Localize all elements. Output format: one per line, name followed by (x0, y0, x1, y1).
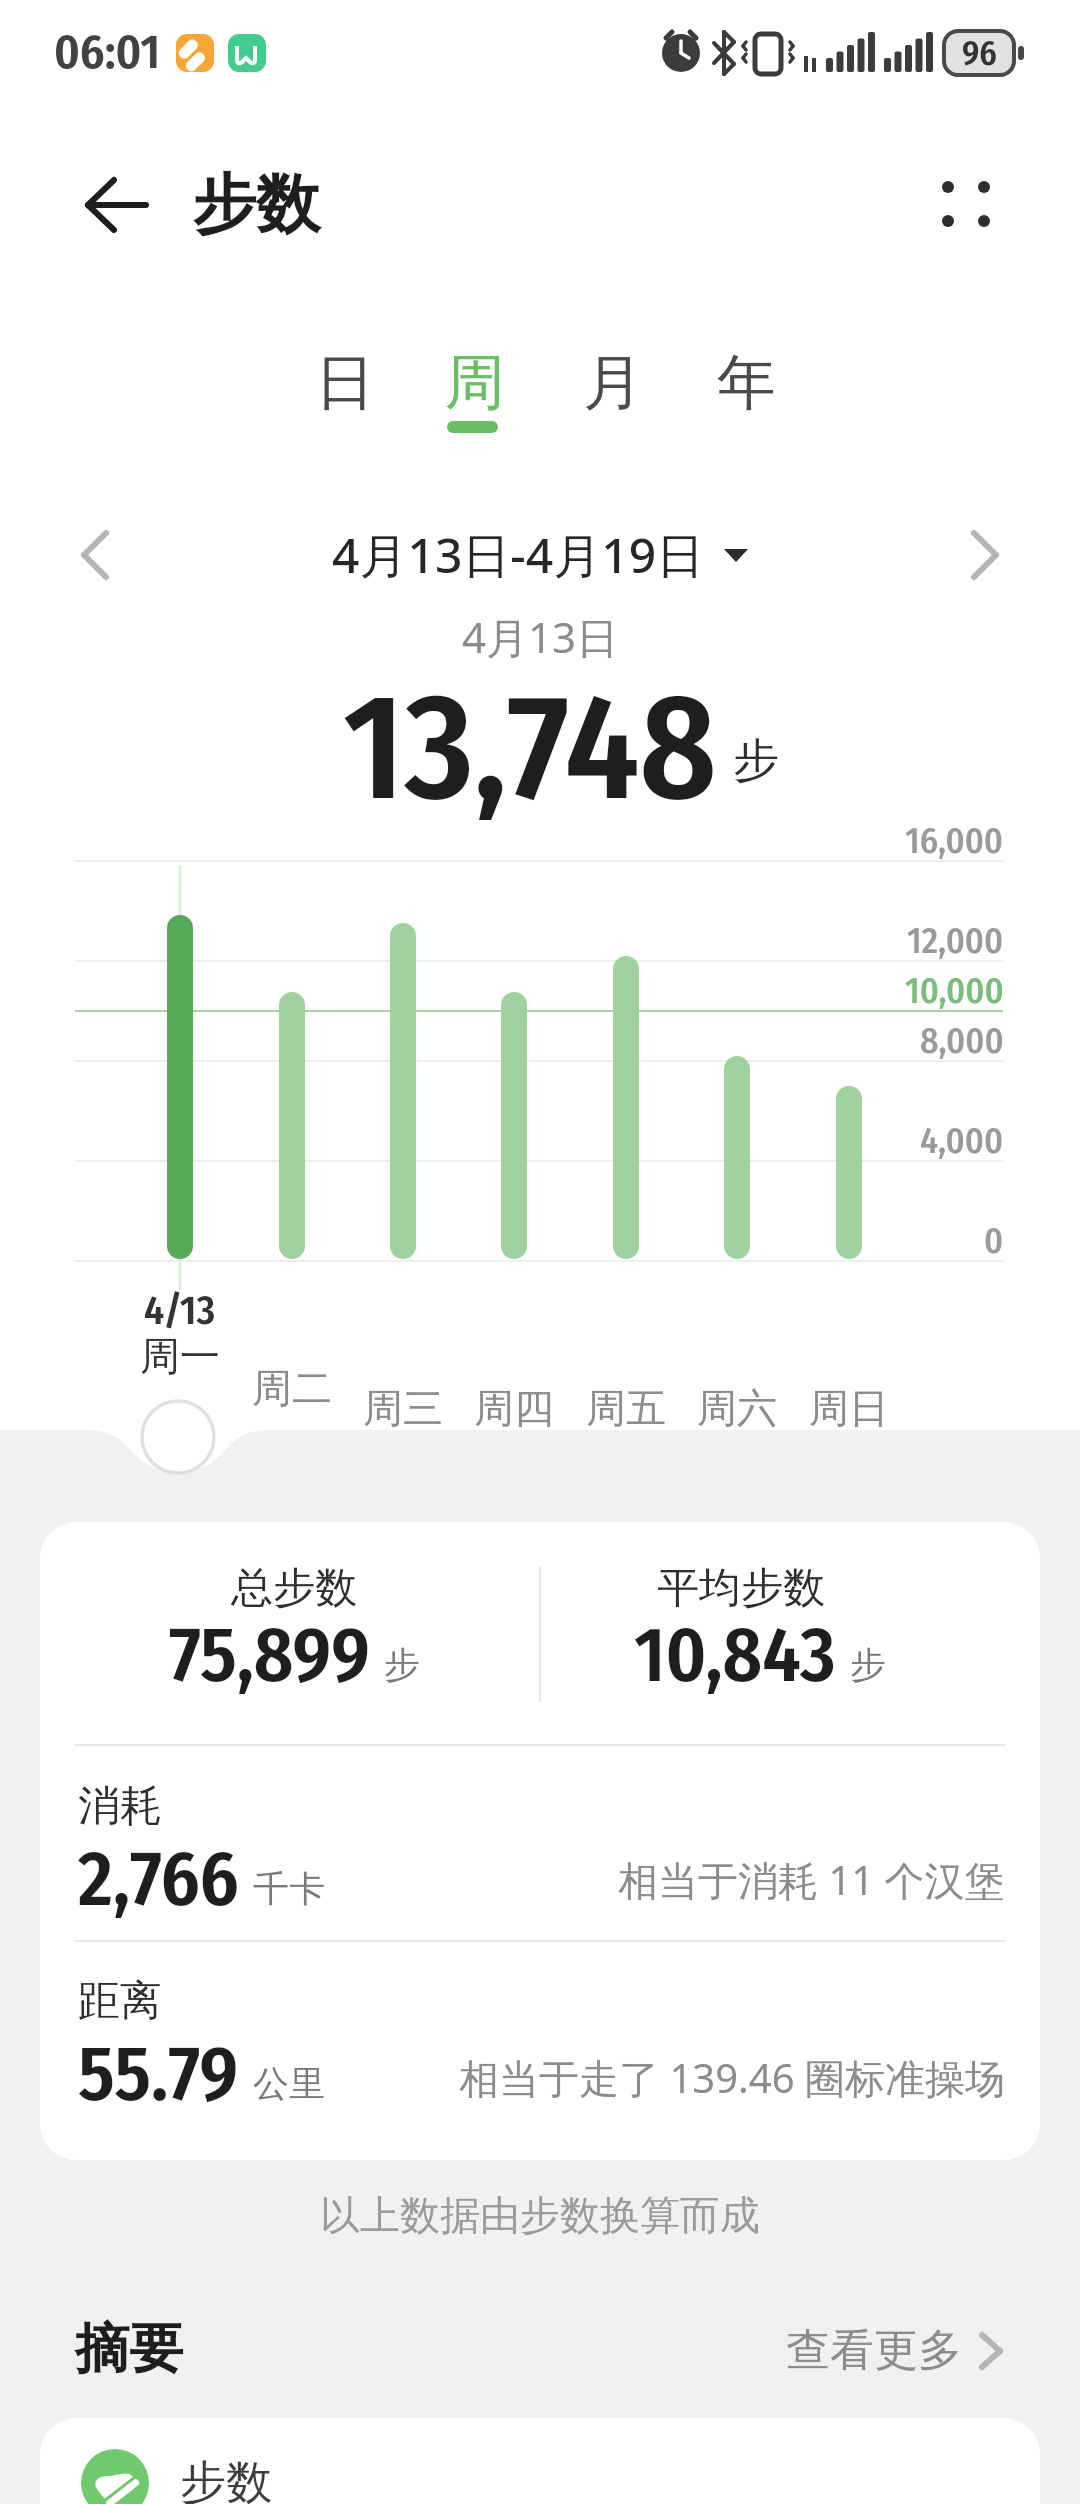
staticText: 相当于消耗 11 个汉堡 (618, 1852, 1005, 1907)
button[interactable]: 日 (315, 345, 371, 411)
button[interactable]: 4月13日-4月19日 (240, 515, 840, 595)
staticText: 10,843 (634, 1610, 836, 1701)
staticText: 10,000 (905, 969, 1004, 1012)
staticText: 75,899 (169, 1610, 370, 1701)
staticText: 周 (445, 345, 501, 411)
staticText: 步 (850, 1642, 886, 1687)
staticText: 月 (583, 345, 639, 411)
staticText: 日 (315, 345, 371, 411)
staticText: 周五 (586, 1383, 666, 1433)
staticText: 摘要 (75, 2315, 183, 2383)
staticText: 步数 (180, 2454, 272, 2504)
button[interactable] (60, 515, 140, 595)
staticText: 总步数 (231, 1562, 357, 1615)
staticText: 2,766 (78, 1834, 239, 1925)
button[interactable]: 步数 (40, 2418, 1040, 2504)
button[interactable]: 年 (717, 345, 773, 411)
staticText: 4/13 (144, 1287, 216, 1335)
button[interactable]: 周 (445, 345, 501, 411)
staticText: 步 (384, 1642, 420, 1687)
button[interactable] (940, 515, 1020, 595)
staticText: 以上数据由步数换算而成 (320, 2190, 760, 2240)
staticText: 13,748 (343, 660, 717, 820)
staticText: 查看更多 (786, 2323, 962, 2378)
staticText: 周一 (140, 1331, 220, 1381)
staticText: 平均步数 (657, 1562, 825, 1615)
staticText: 0 (984, 1219, 1004, 1262)
staticText: 周日 (809, 1383, 889, 1433)
staticText: 公里 (253, 2061, 325, 2106)
staticText: 周三 (363, 1383, 443, 1433)
staticText: 55.79 (78, 2029, 239, 2120)
staticText: 步数 (192, 164, 320, 245)
staticText: 周二 (252, 1363, 332, 1413)
staticText: 8,000 (920, 1019, 1004, 1062)
staticText: 距离 (78, 1975, 162, 2028)
staticText: 年 (717, 345, 773, 411)
staticText: 千卡 (253, 1866, 325, 1911)
staticText: 4月13日 (462, 608, 619, 665)
button[interactable] (916, 160, 1016, 250)
staticText: 4,000 (920, 1119, 1004, 1162)
button[interactable]: 月 (583, 345, 639, 411)
button[interactable]: 查看更多 (786, 2300, 1026, 2400)
staticText: 4月13日-4月19日 (332, 522, 705, 588)
staticText: 16,000 (905, 819, 1004, 862)
staticText: 96 (962, 33, 997, 74)
staticText: 06:01 (54, 23, 161, 81)
staticText: 12,000 (907, 919, 1004, 962)
button[interactable] (60, 164, 150, 248)
staticText: 周六 (697, 1383, 777, 1433)
staticText: 步 (733, 732, 779, 790)
staticText: 消耗 (78, 1780, 162, 1833)
staticText: 相当于走了 139.46 圈标准操场 (459, 2050, 1005, 2105)
staticText: 周四 (474, 1383, 554, 1433)
